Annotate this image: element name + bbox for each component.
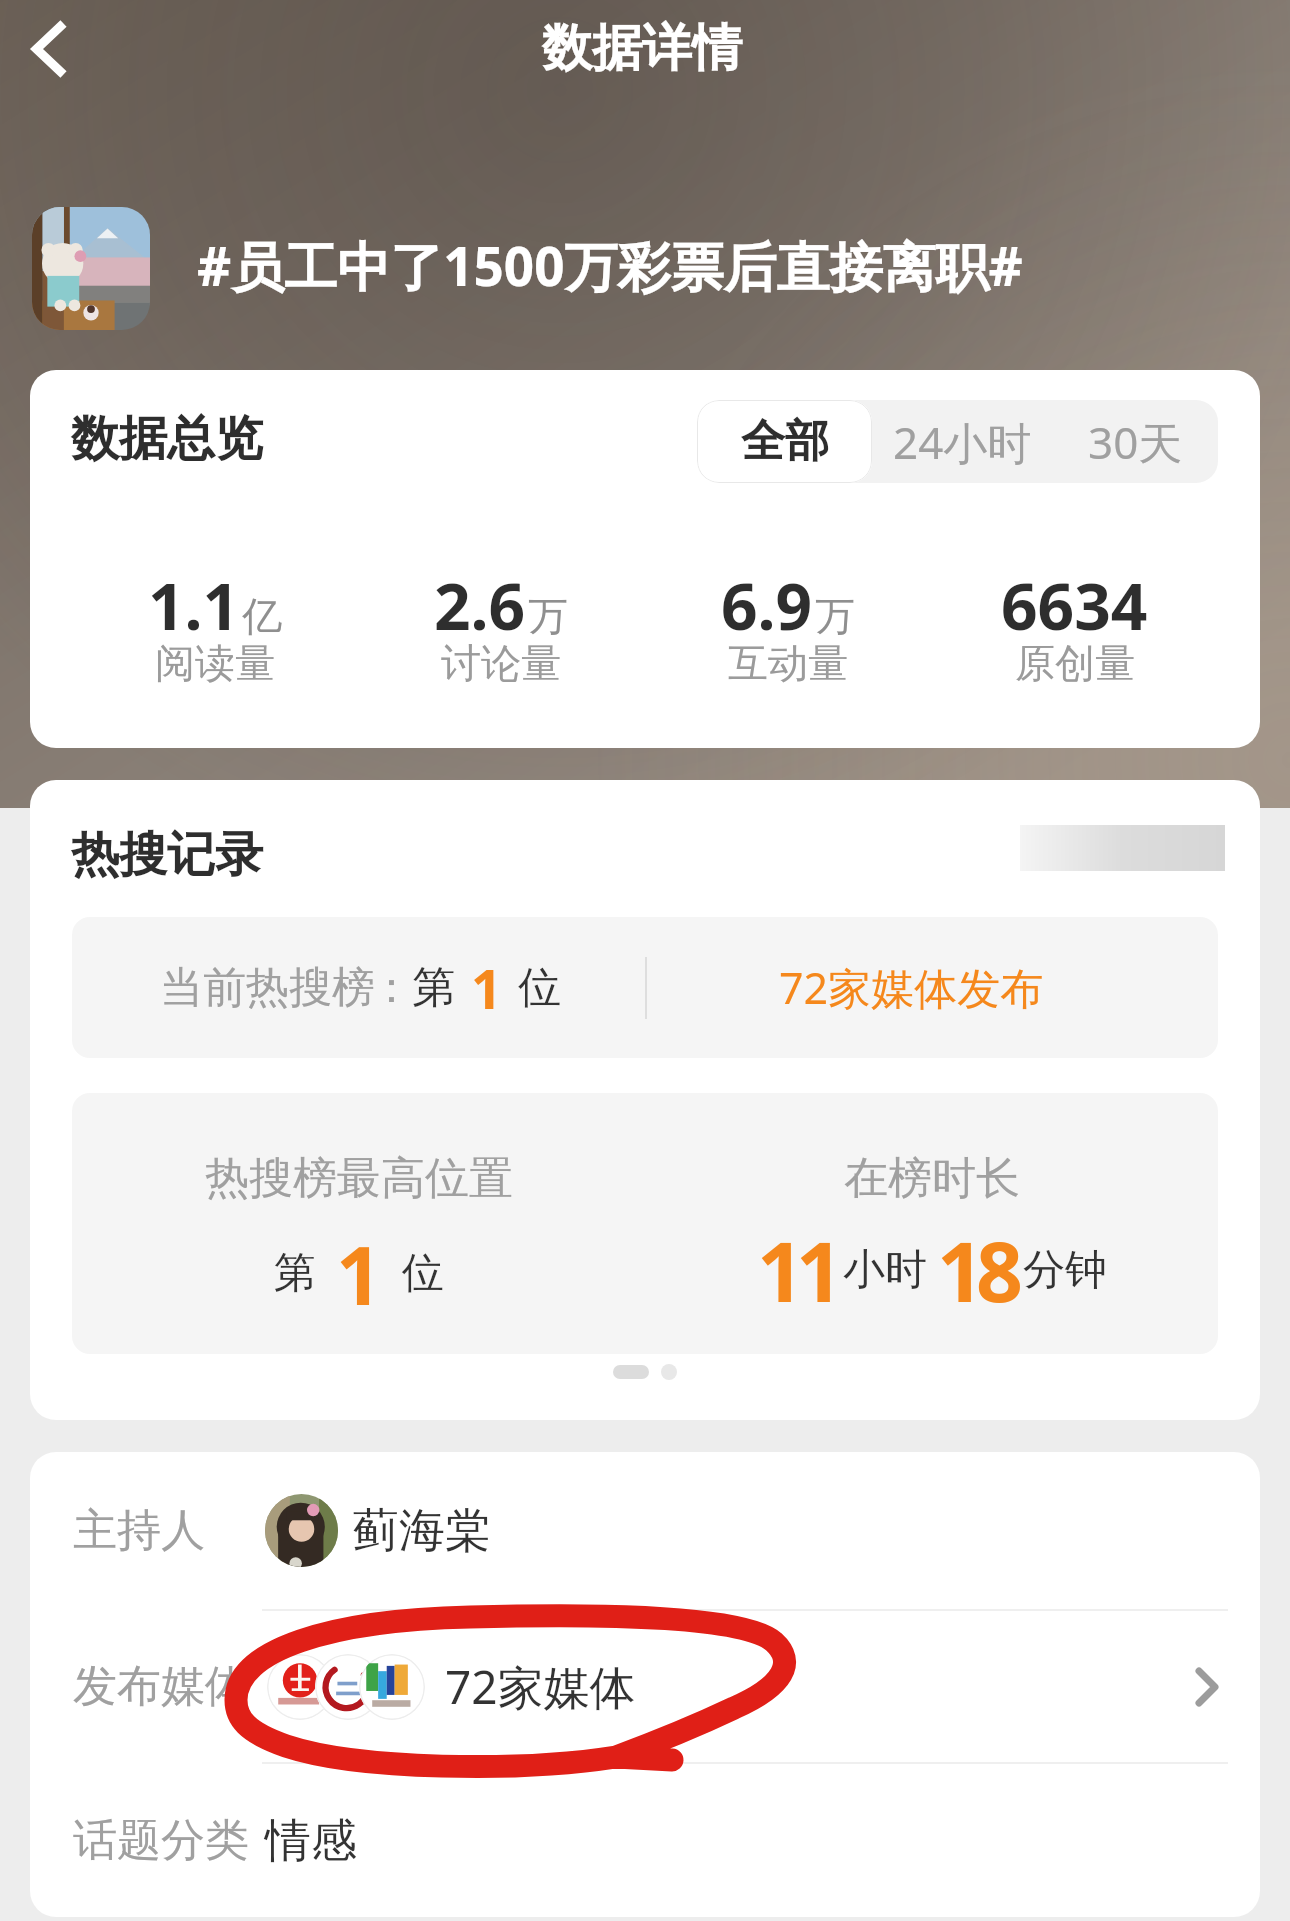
staticText: 72家媒体发布 (779, 958, 1044, 1017)
staticText: 万 (815, 591, 855, 641)
staticText: 2.6 (434, 562, 526, 649)
staticText: 讨论量 (441, 638, 561, 688)
staticText: 第 (412, 961, 455, 1015)
staticText: 亿 (242, 591, 282, 641)
button[interactable]: Back (0, 0, 100, 98)
staticText: 在榜时长 (844, 1151, 1020, 1206)
staticText: 1.1 (148, 562, 240, 649)
button[interactable]: 全部 (697, 400, 872, 483)
button[interactable]: 主持人 (30, 1452, 1260, 1609)
staticText: 1 (471, 951, 502, 1025)
staticText: 原创量 (1015, 638, 1135, 688)
staticText: 位 (402, 1247, 444, 1300)
staticText: 主持人 (73, 1503, 205, 1558)
button[interactable]: 30天 (1052, 400, 1218, 483)
staticText: 11 (757, 1214, 835, 1326)
button[interactable]: 话题分类 (30, 1764, 1260, 1917)
staticText: 情感 (265, 1812, 357, 1870)
staticText: 6.9 (721, 562, 813, 649)
staticText: 位 (518, 961, 561, 1015)
staticText: 阅读量 (155, 638, 275, 688)
staticText: 万 (528, 591, 568, 641)
staticText: 话题分类 (73, 1813, 249, 1868)
staticText: 热搜记录 (71, 825, 263, 885)
staticText: 6634 (1001, 562, 1148, 649)
staticText: 第 (274, 1247, 316, 1300)
staticText: ： (375, 961, 408, 1015)
staticText: 数据详情 (542, 17, 742, 80)
staticText: 分钟 (1023, 1244, 1107, 1297)
staticText: 18 (937, 1214, 1015, 1326)
staticText: 热搜榜最高位置 (205, 1151, 513, 1206)
staticText: 30天 (1088, 412, 1183, 472)
staticText: 蓟海棠 (353, 1502, 491, 1560)
staticText: 1 (336, 1219, 382, 1328)
button[interactable]: 24小时 (872, 400, 1052, 483)
staticText: #员工中了1500万彩票后直接离职# (197, 229, 1023, 301)
staticText: 72家媒体 (445, 1655, 636, 1718)
staticText: 小时 (843, 1244, 927, 1297)
staticText: 全部 (741, 414, 829, 469)
staticText: 互动量 (728, 638, 848, 688)
button[interactable] (32, 207, 150, 330)
staticText: 数据总览 (71, 409, 263, 469)
staticText: 发布媒体 (73, 1659, 249, 1714)
staticText: 当前热搜榜 (160, 961, 375, 1015)
staticText: 24小时 (893, 412, 1032, 472)
button[interactable]: 发布媒体 (30, 1611, 1260, 1762)
